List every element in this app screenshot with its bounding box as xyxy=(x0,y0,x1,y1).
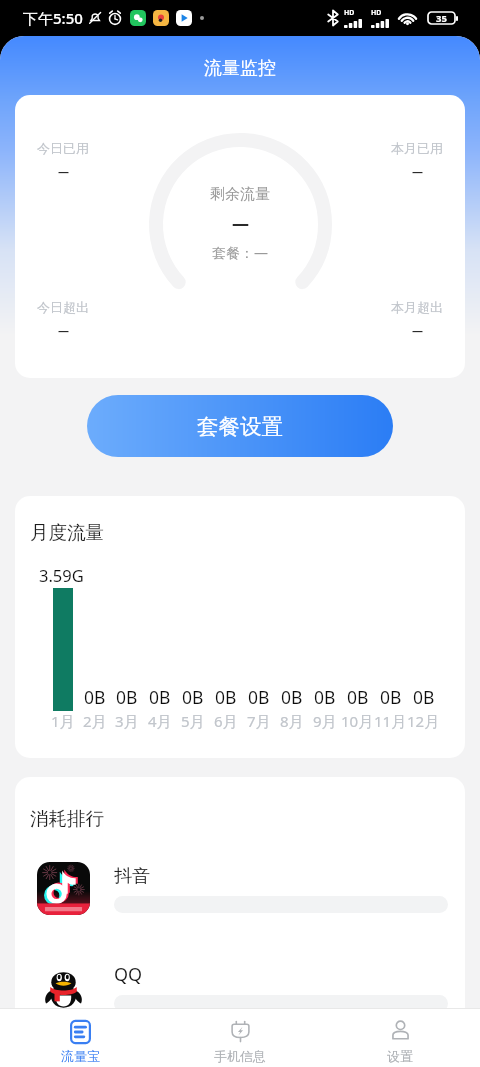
staticText: 0B xyxy=(215,685,237,709)
staticText: 设置 xyxy=(387,1048,413,1064)
staticText: 8月 xyxy=(280,711,304,731)
button[interactable]: QQ xyxy=(37,960,448,1013)
staticText: 今日超出 xyxy=(37,299,89,315)
staticText: 9月 xyxy=(313,711,337,731)
staticText: 流量监控 xyxy=(204,57,276,80)
staticText: 0B xyxy=(84,685,106,709)
staticText: 35 xyxy=(436,12,447,24)
staticText: 抖音 xyxy=(114,865,150,888)
staticText: — xyxy=(232,212,249,235)
staticText: 0B xyxy=(149,685,171,709)
staticText: 0B xyxy=(380,685,402,709)
staticText: QQ xyxy=(114,962,143,987)
staticText: 0B xyxy=(347,685,369,709)
staticText: 2月 xyxy=(83,711,107,731)
staticText: 0B xyxy=(413,685,435,709)
staticText: 下午5:50 xyxy=(23,8,83,28)
staticText: 0B xyxy=(281,685,303,709)
staticText: 月度流量 xyxy=(30,521,104,544)
staticText: 流量宝 xyxy=(61,1048,100,1064)
staticText: 0B xyxy=(248,685,270,709)
staticText: — xyxy=(412,164,423,179)
staticText: 10月 xyxy=(341,711,374,731)
staticText: 套餐设置 xyxy=(197,413,283,440)
staticText: 本月超出 xyxy=(391,299,443,315)
staticText: 消耗排行 xyxy=(30,807,104,830)
staticText: 0B xyxy=(314,685,336,709)
staticText: 1月 xyxy=(51,711,75,731)
staticText: — xyxy=(58,164,69,179)
staticText: 7月 xyxy=(247,711,271,731)
staticText: HD xyxy=(344,8,355,18)
button[interactable]: 设置 xyxy=(320,1009,480,1067)
staticText: 12月 xyxy=(407,711,440,731)
staticText: — xyxy=(412,323,423,338)
staticText: 11月 xyxy=(374,711,407,731)
button[interactable]: 手机信息 xyxy=(160,1009,320,1067)
staticText: 手机信息 xyxy=(214,1048,266,1064)
button[interactable]: 抖音 xyxy=(37,862,448,915)
button[interactable]: 流量宝 xyxy=(0,1009,160,1067)
staticText: — xyxy=(58,323,69,338)
staticText: 0B xyxy=(182,685,204,709)
staticText: 剩余流量 xyxy=(210,185,270,204)
staticText: HD xyxy=(371,8,382,18)
staticText: 今日已用 xyxy=(37,140,89,156)
staticText: 4月 xyxy=(148,711,172,731)
staticText: 套餐：— xyxy=(212,243,268,262)
staticText: 3.59G xyxy=(39,564,84,586)
staticText: 5月 xyxy=(181,711,205,731)
button[interactable]: 套餐设置 xyxy=(87,395,393,457)
staticText: 本月已用 xyxy=(391,140,443,156)
staticText: 6月 xyxy=(214,711,238,731)
staticText: 3月 xyxy=(115,711,139,731)
staticText: 0B xyxy=(116,685,138,709)
